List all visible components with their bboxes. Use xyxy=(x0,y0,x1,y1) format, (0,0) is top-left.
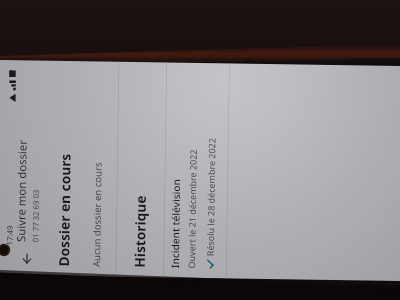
staticText: Dossier en cours xyxy=(54,153,74,267)
button[interactable]: Incident télévision xyxy=(163,62,230,278)
button[interactable]: Retour xyxy=(12,244,41,273)
staticText: Historique xyxy=(130,195,149,268)
staticText: 17:49 xyxy=(4,225,15,245)
staticText: Aucun dossier en cours xyxy=(90,162,105,267)
staticText: Ouvert le 21 décembre 2022 xyxy=(185,149,199,268)
staticText: Résolu le 28 décembre 2022 xyxy=(204,138,218,256)
staticText: Incident télévision xyxy=(168,178,183,268)
staticText: 01 77 32 69 03 xyxy=(30,189,41,242)
staticText: Suivre mon dossier xyxy=(13,140,30,242)
